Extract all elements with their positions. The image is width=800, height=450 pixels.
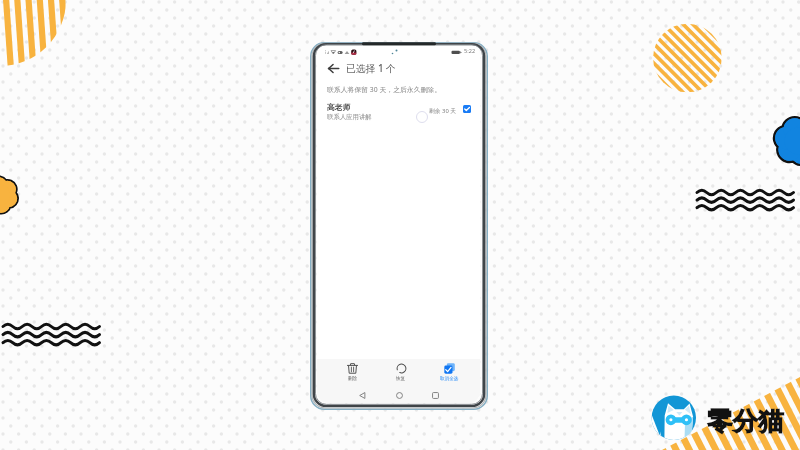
staticText: 联系人将保留 30 天，之后永久删除。 [327,85,442,94]
button[interactable]: 恢复 [377,359,425,384]
staticText: 删除 [348,376,358,382]
staticText: 高老师 [327,102,351,112]
button[interactable]: 取消选择 高老师 [463,105,471,113]
staticText: 联系人应用讲解 [327,113,372,121]
button[interactable]: 主屏幕 [391,387,407,403]
button[interactable]: 返回 [354,387,370,403]
staticText: 恢复 [396,376,406,382]
staticText: 零分猫 [707,405,784,437]
staticText: 已选择 1 个 [346,62,396,75]
button[interactable]: 高老师 [317,101,480,129]
staticText: 剩余 30 天 [429,107,457,115]
button[interactable]: 最近任务 [427,387,443,403]
button[interactable]: 删除 [328,359,377,384]
staticText: 5:22 [464,47,476,55]
staticText: 取消全选 [440,376,459,382]
button[interactable]: 取消全选 [425,359,473,384]
button[interactable]: 返回 [326,61,341,76]
